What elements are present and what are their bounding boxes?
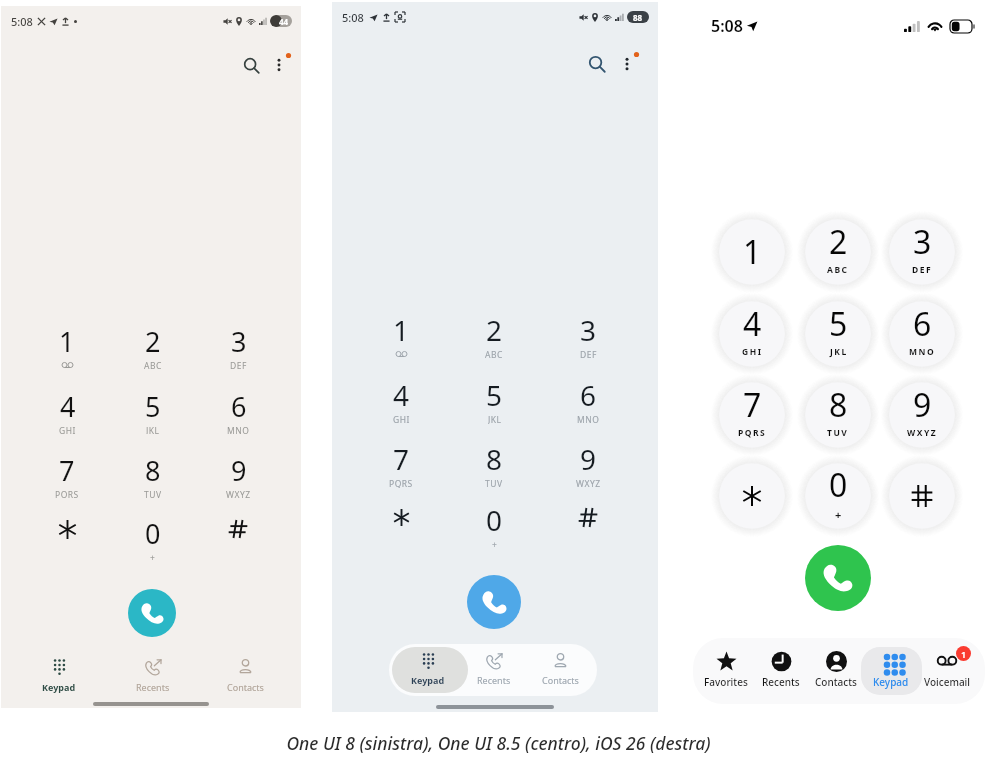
staticText: ABC (827, 264, 849, 276)
button[interactable]: 0 (795, 455, 881, 537)
staticText: 6 (580, 376, 597, 414)
staticText: 4 (60, 388, 76, 425)
button[interactable] (879, 455, 965, 537)
button[interactable]: 8 (462, 440, 526, 488)
button[interactable]: 7 (36, 452, 98, 498)
button[interactable]: Favorites (698, 650, 754, 694)
button[interactable]: Recents (461, 652, 527, 692)
button[interactable]: Contacts (808, 650, 864, 694)
staticText: 5:08 (11, 14, 33, 29)
button[interactable]: 9 (556, 440, 620, 488)
staticText: 4 (743, 302, 762, 346)
staticText: WXYZ (907, 427, 938, 439)
button[interactable]: 7 (709, 374, 795, 456)
button[interactable]: Search (237, 51, 265, 79)
staticText: PQRS (55, 489, 79, 498)
button[interactable]: 6 (556, 376, 620, 424)
button[interactable]: More options (613, 50, 641, 78)
button[interactable]: More options (265, 51, 293, 79)
staticText: 5 (145, 388, 161, 425)
staticText: DEF (230, 360, 247, 369)
button[interactable]: 4 (709, 293, 795, 375)
button[interactable]: 2 (795, 211, 881, 293)
button[interactable]: Search (583, 50, 611, 78)
button[interactable] (709, 455, 795, 537)
button[interactable]: 5 (462, 376, 526, 424)
staticText: 0 (145, 515, 161, 552)
staticText: ABC (485, 349, 503, 359)
button[interactable]: 2 (122, 323, 184, 369)
button[interactable]: Contacts (527, 652, 593, 692)
staticText: Keypad (42, 681, 76, 693)
staticText: 5 (486, 376, 503, 414)
staticText: DEF (912, 264, 933, 276)
staticText: Keypad (873, 675, 909, 689)
button[interactable] (369, 501, 433, 549)
staticText: 9 (580, 440, 597, 478)
button[interactable] (556, 501, 620, 549)
button[interactable]: 4 (369, 376, 433, 424)
button[interactable]: 6 (879, 293, 965, 375)
staticText: GHI (393, 414, 410, 424)
button[interactable]: Keypad (395, 652, 461, 692)
button[interactable]: 8 (122, 452, 184, 498)
button[interactable]: Contacts (209, 658, 281, 700)
staticText: 8 (486, 440, 503, 478)
button[interactable]: 3 (556, 311, 620, 359)
staticText: 5:08 (342, 10, 364, 25)
button[interactable]: 9 (207, 452, 269, 498)
button[interactable]: 1 (369, 311, 433, 359)
button[interactable]: 7 (369, 440, 433, 488)
staticText: 6 (231, 388, 247, 425)
staticText: 2 (829, 220, 848, 264)
staticText: 5:08 (711, 15, 743, 37)
button[interactable]: 8 (795, 374, 881, 456)
button[interactable]: 5 (122, 388, 184, 434)
staticText: 7 (59, 452, 75, 489)
staticText: Contacts (542, 674, 579, 686)
button[interactable]: Call (805, 545, 871, 611)
button[interactable]: 3 (207, 323, 269, 369)
button[interactable]: Keypad (23, 658, 95, 700)
button[interactable]: 1 (919, 650, 975, 694)
button[interactable]: Call (467, 575, 521, 629)
staticText: 7 (393, 440, 410, 478)
staticText: PQRS (389, 478, 413, 488)
staticText: 6 (913, 302, 932, 346)
staticText: PQRS (738, 427, 767, 439)
staticText: DEF (580, 349, 597, 359)
staticText: Contacts (815, 675, 857, 689)
button[interactable]: 3 (879, 211, 965, 293)
staticText: One UI 8 (sinistra), One UI 8.5 (centro)… (286, 731, 711, 755)
button[interactable]: Recents (753, 650, 809, 694)
staticText: 3 (580, 311, 597, 349)
staticText: TUV (827, 427, 849, 439)
staticText: Recents (762, 675, 800, 689)
staticText: 3 (913, 220, 932, 264)
button[interactable]: 6 (207, 388, 269, 434)
staticText: 9 (231, 452, 247, 489)
staticText: 2 (486, 311, 503, 349)
button[interactable]: 9 (879, 374, 965, 456)
staticText: Recents (477, 674, 511, 686)
staticText: MNO (577, 414, 600, 424)
staticText: 88 (633, 12, 643, 23)
button[interactable]: 0 (122, 515, 184, 561)
button[interactable]: 0 (462, 501, 526, 549)
button[interactable]: 4 (36, 388, 98, 434)
button[interactable]: 1 (709, 211, 795, 293)
button[interactable] (207, 515, 269, 561)
staticText: 9 (913, 383, 932, 427)
staticText: + (835, 507, 842, 522)
button[interactable]: Recents (117, 658, 189, 700)
staticText: WXYZ (576, 478, 601, 488)
button[interactable]: 2 (462, 311, 526, 359)
staticText: 4 (393, 376, 410, 414)
button[interactable]: Call (128, 589, 176, 637)
button[interactable] (36, 515, 98, 561)
button[interactable]: 5 (795, 293, 881, 375)
staticText: 8 (829, 383, 848, 427)
button[interactable]: Keypad (863, 650, 919, 694)
staticText: GHI (59, 425, 76, 434)
button[interactable]: 1 (36, 323, 98, 369)
